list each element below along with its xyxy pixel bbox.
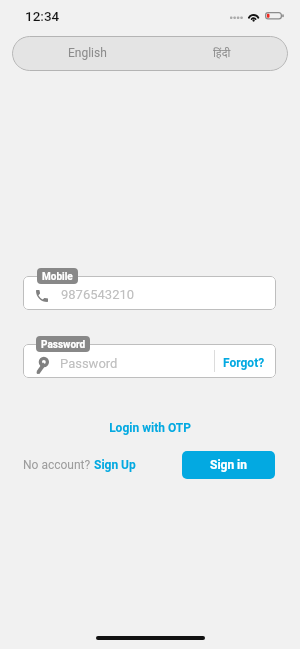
staticText: Sign in bbox=[210, 458, 248, 472]
button[interactable]: Login with OTP bbox=[0, 417, 300, 439]
staticText: Login with OTP bbox=[109, 421, 191, 435]
staticText: 9876543210 bbox=[61, 287, 135, 302]
button[interactable]: हिंदी bbox=[165, 36, 288, 71]
button[interactable]: English bbox=[12, 36, 165, 71]
staticText: English bbox=[68, 46, 107, 60]
staticText: Password bbox=[41, 339, 86, 351]
button[interactable]: Sign Up bbox=[94, 458, 136, 472]
staticText: 12:34 bbox=[25, 8, 60, 24]
staticText: Password bbox=[60, 356, 118, 371]
staticText: No account? bbox=[23, 458, 94, 472]
staticText: Forgot? bbox=[223, 356, 265, 370]
staticText: हिंदी bbox=[213, 45, 231, 60]
button[interactable]: Forgot? bbox=[215, 344, 276, 378]
button[interactable]: Sign in bbox=[182, 451, 275, 479]
staticText: Mobile bbox=[42, 271, 73, 283]
